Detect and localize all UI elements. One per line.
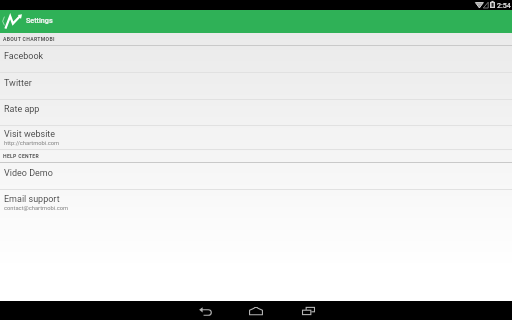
button[interactable]: Email support (0, 190, 512, 216)
staticText: http://chartmobi.com (4, 140, 60, 147)
staticText: Visit website (4, 129, 56, 140)
button[interactable]: Rate app (0, 100, 512, 126)
button[interactable]: Back (179, 301, 231, 320)
button[interactable]: Twitter (0, 73, 512, 100)
staticText: ABOUT CHARTMOBI (3, 36, 55, 42)
staticText: Video Demo (4, 168, 53, 179)
button[interactable]: Video Demo (0, 163, 512, 190)
staticText: HELP CENTER (3, 153, 40, 159)
staticText: Settings (26, 16, 53, 24)
button[interactable]: Recent apps (282, 301, 334, 320)
staticText: Facebook (4, 51, 44, 62)
button[interactable]: Home (230, 301, 282, 320)
button[interactable]: Visit website (0, 126, 512, 150)
button[interactable]: Navigate up (0, 10, 26, 33)
button[interactable]: Facebook (0, 46, 512, 73)
staticText: Rate app (4, 104, 40, 115)
staticText: Twitter (4, 78, 32, 89)
staticText: contact@chartmobi.com (4, 205, 69, 212)
staticText: Email support (4, 194, 60, 205)
staticText: 2:54 (497, 1, 511, 9)
